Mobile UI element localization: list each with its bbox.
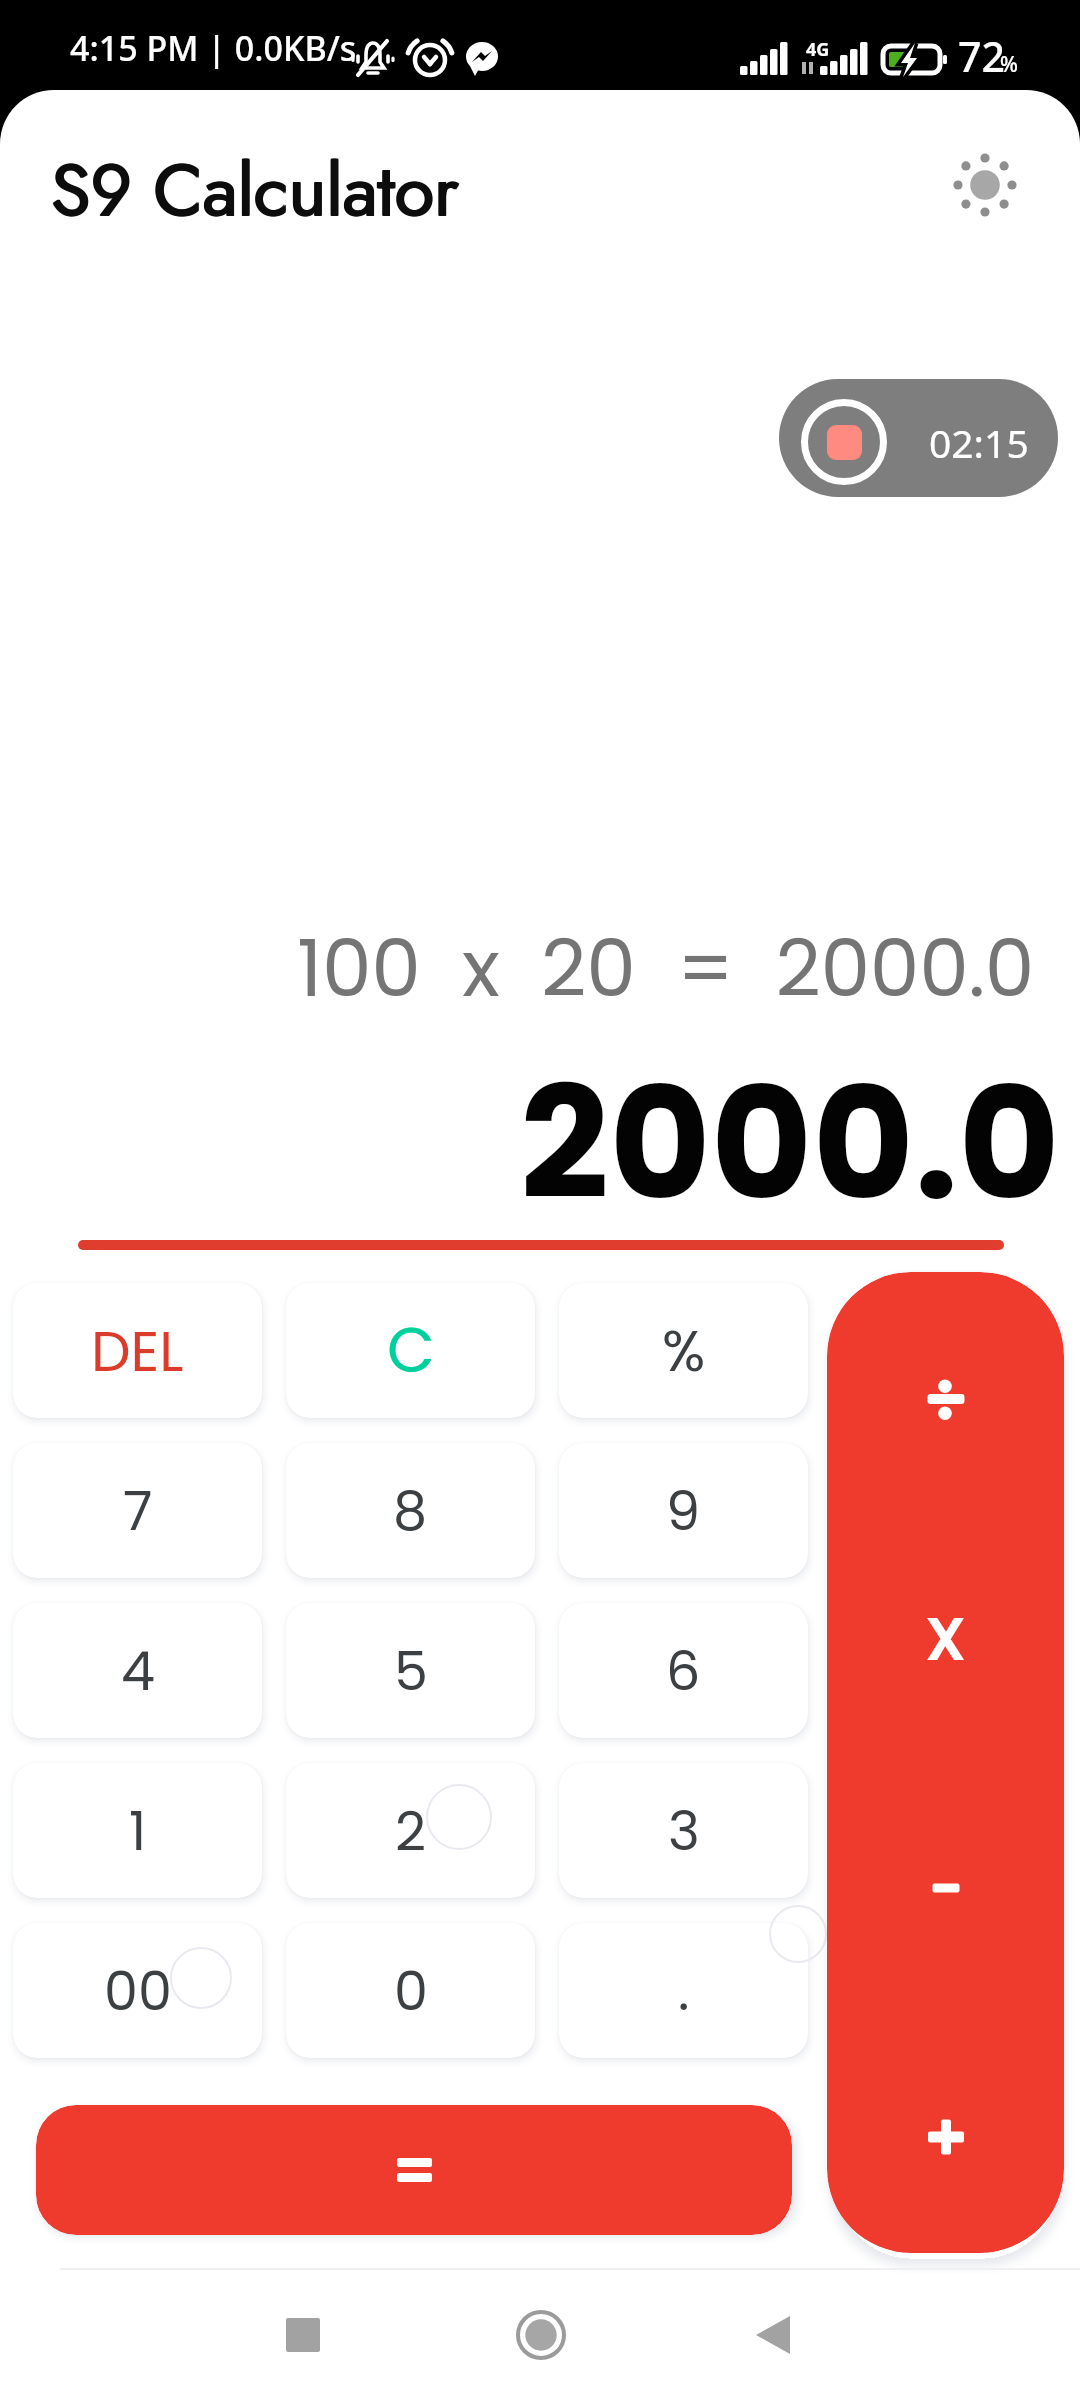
button[interactable]: Subtract <box>827 1768 1064 2008</box>
button[interactable]: 5 <box>286 1603 535 1738</box>
button[interactable]: C <box>286 1283 535 1418</box>
staticText: . <box>678 1953 690 2029</box>
button[interactable]: 0 <box>286 1923 535 2058</box>
button[interactable]: Recent apps <box>253 2285 353 2385</box>
button[interactable]: 9 <box>559 1443 808 1578</box>
button[interactable]: Home <box>491 2285 591 2385</box>
staticText: 100 x 20 = 2000.0 <box>0 913 1034 1024</box>
staticText: 4G <box>806 37 830 62</box>
button[interactable]: 6 <box>559 1603 808 1738</box>
staticText: DEL <box>91 1312 184 1390</box>
staticText: S9 Calculator <box>51 139 459 243</box>
button[interactable]: % <box>559 1283 808 1418</box>
staticText: 02:15 <box>929 416 1029 469</box>
staticText: 4:15 PM | 0.0KB/s <box>70 25 357 71</box>
staticText: C <box>387 1307 435 1394</box>
staticText: S9 Calculator <box>52 139 460 243</box>
staticText: S9 Calculator <box>50 139 458 243</box>
button[interactable]: Equals <box>36 2105 792 2235</box>
staticText: X <box>925 1597 967 1681</box>
button[interactable]: . <box>559 1923 808 2058</box>
staticText: S9 Calculator <box>50 138 458 242</box>
staticText: 8 <box>393 1473 428 1549</box>
button[interactable]: Multiply <box>827 1519 1064 1759</box>
button[interactable]: 4 <box>13 1603 262 1738</box>
button[interactable]: 00 <box>13 1923 262 2058</box>
staticText: 9 <box>666 1473 701 1549</box>
button[interactable]: Add <box>827 2017 1064 2253</box>
staticText: 5 <box>394 1633 428 1709</box>
staticText: 1 <box>129 1793 147 1869</box>
staticText: S9 Calculator <box>51 138 459 242</box>
button[interactable]: 7 <box>13 1443 262 1578</box>
button[interactable]: Divide <box>827 1279 1064 1519</box>
staticText: 4 <box>121 1633 155 1709</box>
staticText: 3 <box>668 1793 700 1869</box>
staticText: % <box>1000 50 1018 79</box>
button[interactable]: Toggle brightness <box>930 130 1040 240</box>
button[interactable]: 1 <box>13 1763 262 1898</box>
staticText: 2000.0 <box>0 1034 1060 1252</box>
staticText: 7 <box>123 1473 153 1549</box>
staticText: 6 <box>666 1633 701 1709</box>
staticText: 72 <box>958 28 1005 84</box>
staticText: % <box>662 1311 706 1391</box>
button[interactable]: DEL <box>13 1283 262 1418</box>
staticText: 00 <box>104 1953 172 2029</box>
staticText: 2 <box>395 1793 427 1869</box>
staticText: S9 Calculator <box>52 138 460 242</box>
staticText: 0 <box>394 1953 428 2029</box>
button[interactable]: 2 <box>286 1763 535 1898</box>
button[interactable]: Stop recording <box>779 379 1058 497</box>
button[interactable]: 8 <box>286 1443 535 1578</box>
button[interactable]: 3 <box>559 1763 808 1898</box>
button[interactable]: Back <box>723 2285 823 2385</box>
